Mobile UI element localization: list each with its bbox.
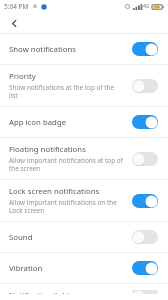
button[interactable]: Off bbox=[129, 228, 161, 246]
button[interactable]: Off bbox=[129, 77, 161, 95]
button[interactable]: Priority bbox=[0, 65, 168, 106]
button[interactable]: Lock screen notifications bbox=[0, 180, 168, 221]
staticText: Floating notifications bbox=[9, 144, 86, 155]
button[interactable]: On bbox=[129, 40, 161, 58]
staticText: 4G bbox=[143, 3, 150, 10]
button[interactable]: On bbox=[129, 192, 161, 210]
staticText: Allow important notifications at top of … bbox=[9, 156, 124, 173]
staticText: Show notifications bbox=[9, 44, 77, 55]
staticText: 5:04 PM bbox=[4, 2, 29, 11]
staticText: Sound bbox=[9, 232, 33, 243]
staticText: Show notifications at the top of the lis… bbox=[9, 83, 124, 100]
staticText: Allow important notifications on the Loc… bbox=[9, 198, 124, 215]
staticText: Vibration bbox=[9, 263, 43, 274]
button[interactable]: Sound bbox=[0, 222, 168, 252]
staticText: App icon badge bbox=[9, 117, 67, 128]
button[interactable]: Floating notifications bbox=[0, 138, 168, 179]
button[interactable]: Off bbox=[129, 150, 161, 168]
button[interactable]: On bbox=[129, 113, 161, 131]
button[interactable]: On bbox=[129, 259, 161, 277]
staticText: Priority bbox=[9, 71, 36, 82]
button[interactable]: App icon badge bbox=[0, 107, 168, 137]
staticText: Lock screen notifications bbox=[9, 186, 100, 197]
button[interactable]: Show notifications bbox=[0, 34, 168, 64]
button[interactable]: Vibration bbox=[0, 253, 168, 283]
button[interactable]: Off bbox=[129, 290, 161, 294]
staticText: Notification light bbox=[9, 290, 71, 294]
button[interactable]: Notification light bbox=[0, 284, 168, 300]
button[interactable]: Back bbox=[5, 14, 23, 32]
